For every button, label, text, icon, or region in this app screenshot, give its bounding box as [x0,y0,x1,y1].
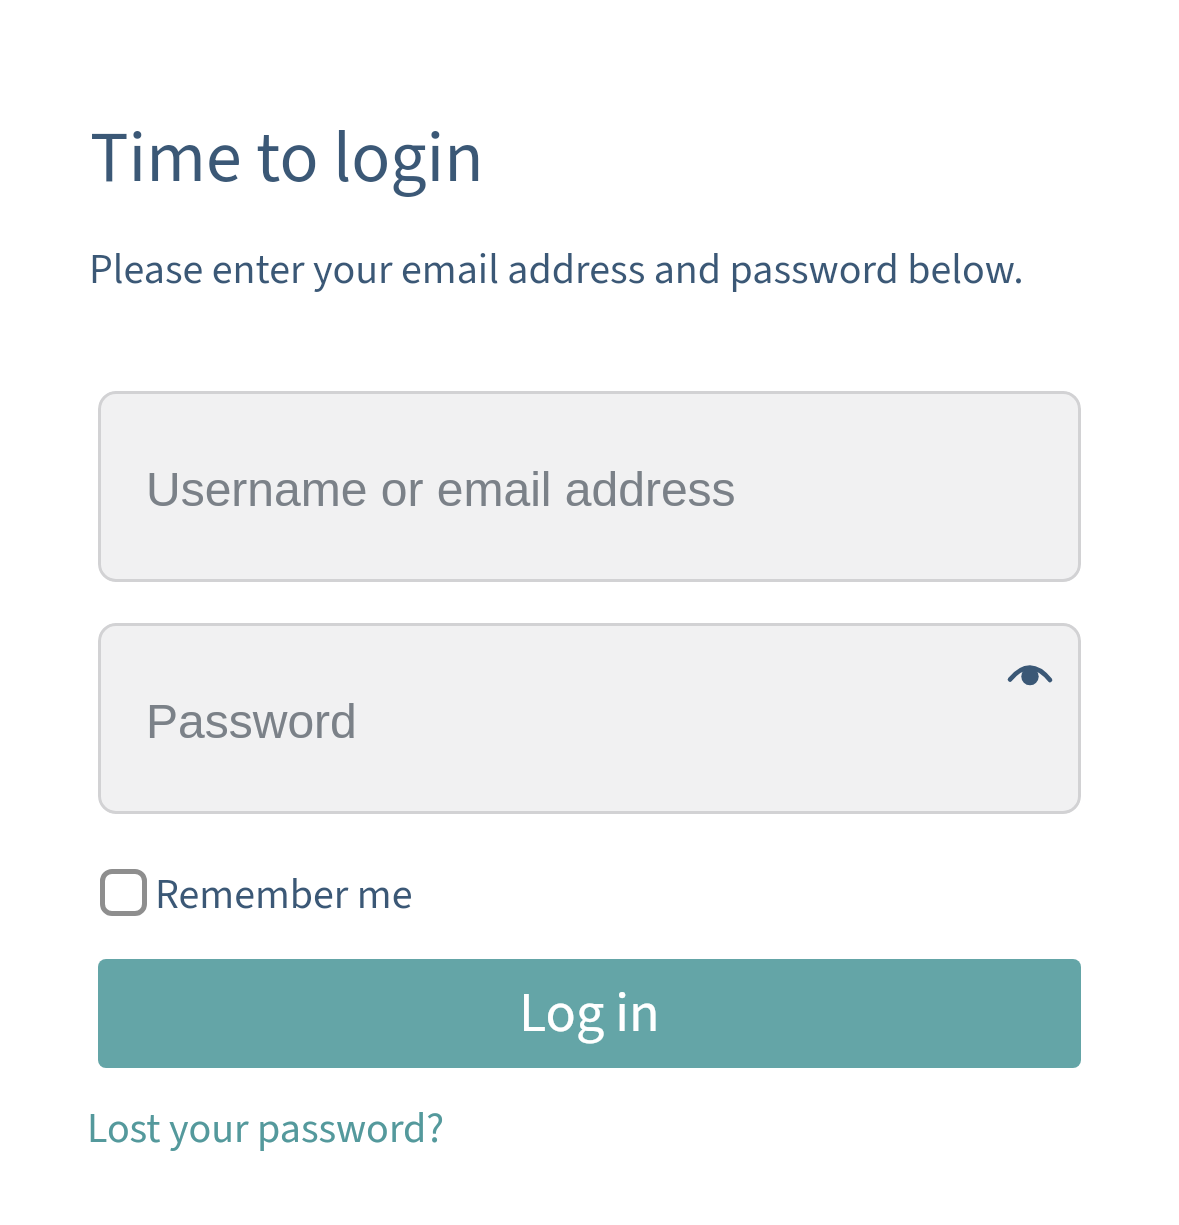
button[interactable]: Lost your password? [87,1099,445,1159]
staticText: Remember me [155,865,413,925]
button[interactable] [1008,662,1052,688]
staticText: Time to login [90,107,484,210]
staticText: Log in [519,974,660,1054]
staticText: Password [146,695,357,749]
button[interactable]: Username or email address [98,391,1081,582]
staticText: Please enter your email address and pass… [89,240,1024,300]
button[interactable] [100,869,147,916]
button[interactable]: Log in [98,959,1081,1068]
staticText: Username or email address [146,463,736,517]
button[interactable]: Password [98,623,1081,814]
